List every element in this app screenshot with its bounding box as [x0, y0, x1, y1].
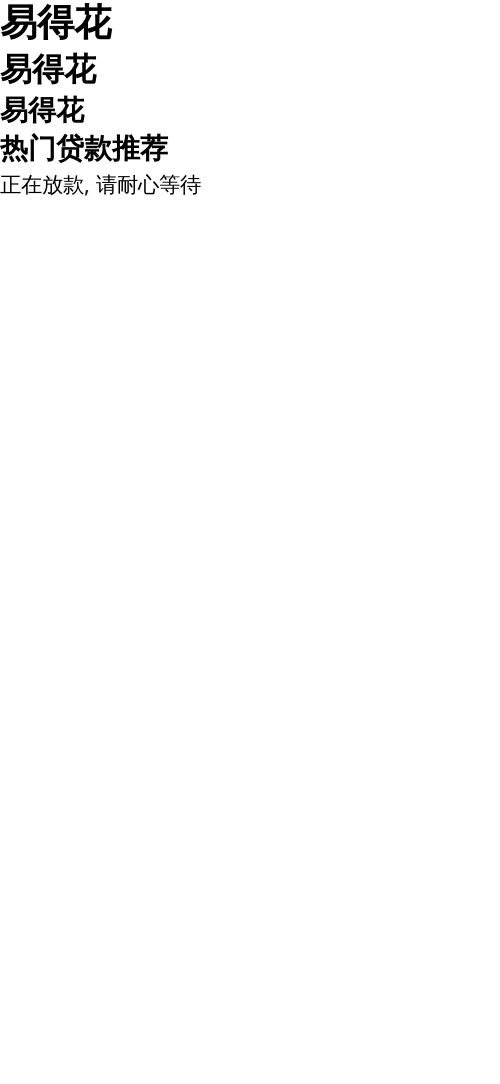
staticText: 易得花: [0, 0, 111, 46]
staticText: 热门贷款推荐: [0, 132, 168, 166]
staticText: 易得花: [0, 50, 96, 89]
staticText: 易得花: [0, 93, 84, 128]
staticText: 正在放款, 请耐心等待: [0, 170, 201, 198]
